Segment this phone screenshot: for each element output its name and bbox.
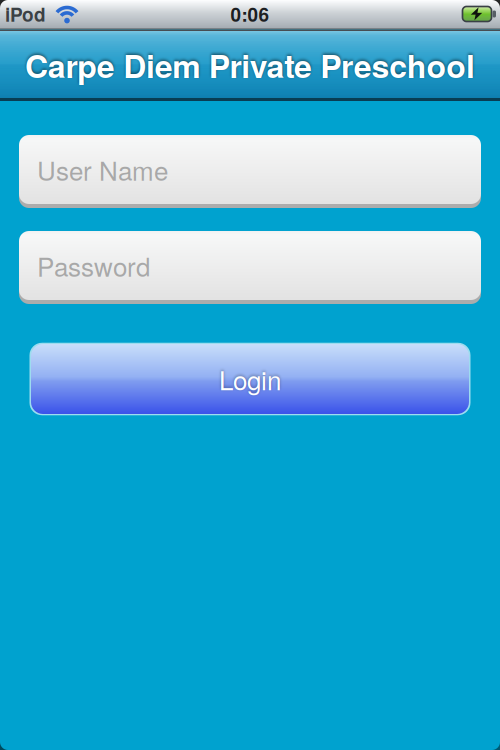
staticText: 0:06: [230, 0, 269, 28]
staticText: User Name: [37, 151, 168, 188]
staticText: Carpe Diem Private Preschool: [25, 42, 475, 88]
button[interactable]: Password: [19, 229, 481, 302]
staticText: Login: [219, 360, 281, 398]
staticText: iPod: [5, 0, 46, 28]
staticText: Password: [37, 247, 150, 284]
button[interactable]: Login: [29, 342, 471, 416]
button[interactable]: User Name: [19, 133, 481, 206]
